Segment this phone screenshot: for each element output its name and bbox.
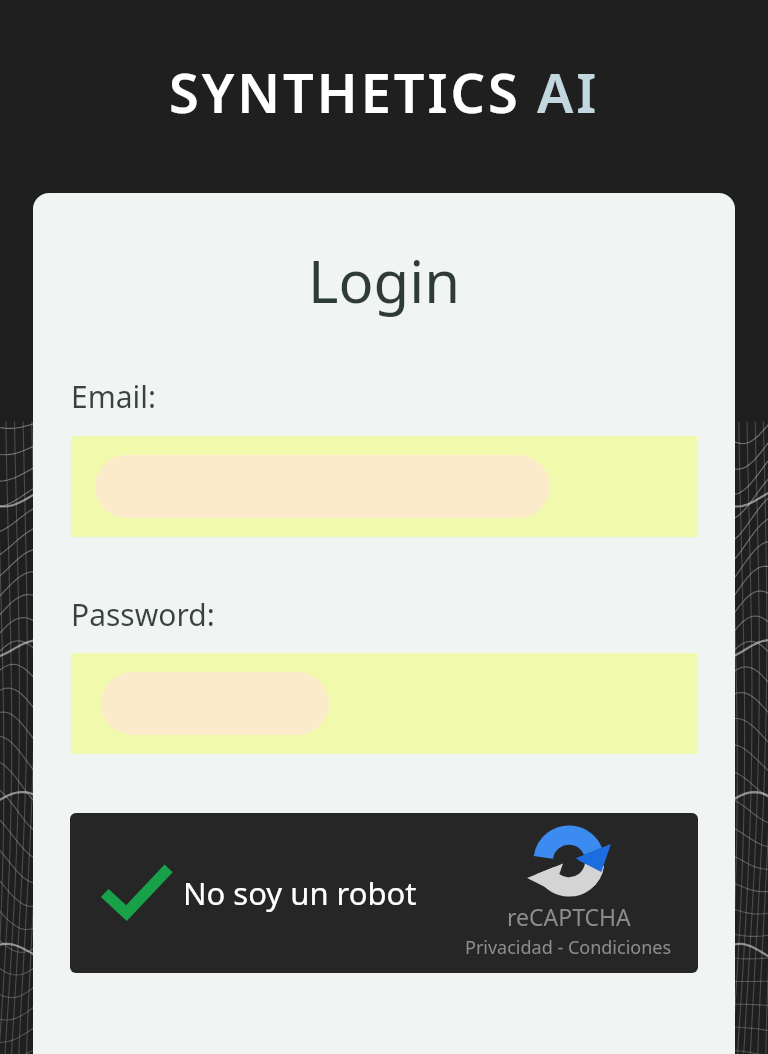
staticText: SYNTHETICS (169, 55, 521, 129)
button[interactable]: No soy un robot (70, 813, 698, 973)
staticText: Privacidad - Condiciones (465, 935, 672, 960)
staticText: AI (537, 55, 600, 129)
button[interactable] (71, 436, 697, 537)
staticText: Password: (71, 594, 215, 635)
staticText: No soy un robot (183, 872, 417, 914)
staticText: Email: (71, 376, 157, 417)
staticText: Login (33, 241, 735, 320)
button[interactable] (71, 653, 697, 754)
staticText: reCAPTCHA (507, 901, 631, 932)
